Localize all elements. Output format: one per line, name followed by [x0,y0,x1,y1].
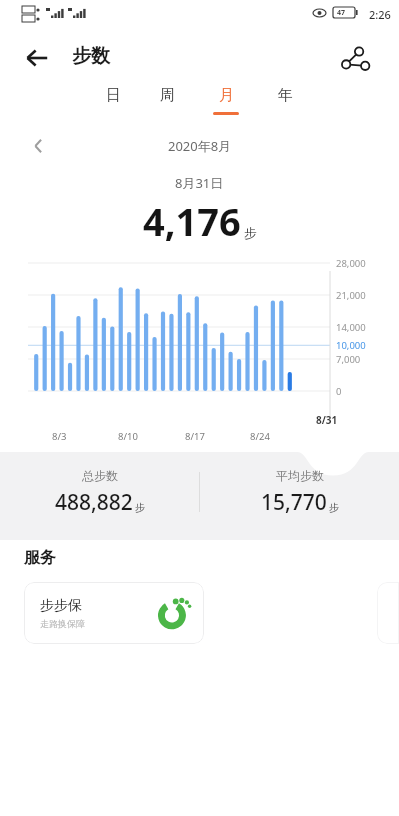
staticText: 步数 [72,44,110,68]
staticText: 21,000 [336,289,366,302]
staticText: 步 [329,501,339,514]
staticText: 0 [336,385,342,398]
staticText: 15,770 [261,488,327,517]
staticText: 8/31 [316,413,338,427]
staticText: 日 [106,86,121,105]
staticText: 47 [337,8,346,18]
staticText: 2:26 [369,7,391,22]
staticText: 总步数 [82,468,118,483]
staticText: 8/3 [52,430,67,443]
staticText: 年 [278,86,293,105]
button[interactable]: Share [338,42,372,76]
staticText: 走路换保障 [40,618,85,629]
staticText: 4,176 [143,195,241,247]
staticText: 月 [219,86,234,105]
staticText: 周 [160,86,175,105]
button[interactable]: 步步保 [24,582,204,644]
staticText: 服务 [24,548,56,568]
staticText: 8/17 [185,430,205,443]
button[interactable]: More services [377,582,399,644]
staticText: 8/24 [250,430,270,443]
staticText: 14,000 [336,321,366,334]
staticText: 步步保 [40,597,82,615]
staticText: 步 [244,225,257,241]
staticText: 7,000 [336,353,361,366]
staticText: 2020年8月 [168,137,232,155]
staticText: 488,882 [55,488,133,517]
button[interactable]: 月 [207,86,245,115]
button[interactable]: 日 [100,86,127,112]
staticText: 28,000 [336,257,366,270]
staticText: 10,000 [336,339,366,352]
button[interactable]: 周 [154,86,181,112]
button[interactable]: Back [20,41,54,75]
staticText: 平均步数 [276,468,324,483]
staticText: 步 [135,501,145,514]
button[interactable]: 年 [272,86,299,112]
staticText: 8/10 [118,430,138,443]
button[interactable]: Previous month [26,133,52,159]
staticText: 8月31日 [175,174,224,192]
